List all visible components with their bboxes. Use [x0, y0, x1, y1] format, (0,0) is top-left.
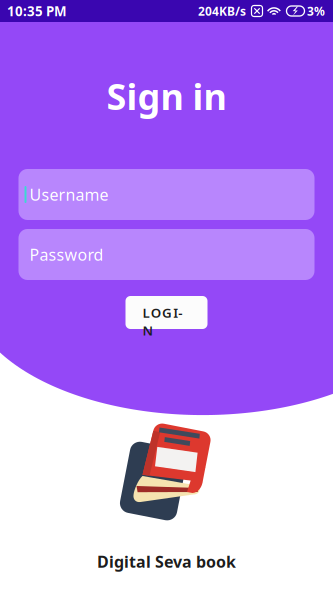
button[interactable]: Username: [18, 169, 314, 220]
staticText: Password: [29, 244, 103, 265]
staticText: 10:35 PM: [7, 2, 67, 20]
staticText: 3%: [307, 3, 325, 19]
staticText: LOGIN: [143, 304, 190, 321]
staticText: 204KB/s: [198, 3, 246, 19]
staticText: Username: [29, 184, 108, 205]
button[interactable]: LOGIN: [125, 296, 207, 329]
staticText: Sign in: [106, 72, 226, 120]
button[interactable]: Password: [18, 229, 314, 280]
staticText: Digital Seva book: [97, 551, 236, 572]
